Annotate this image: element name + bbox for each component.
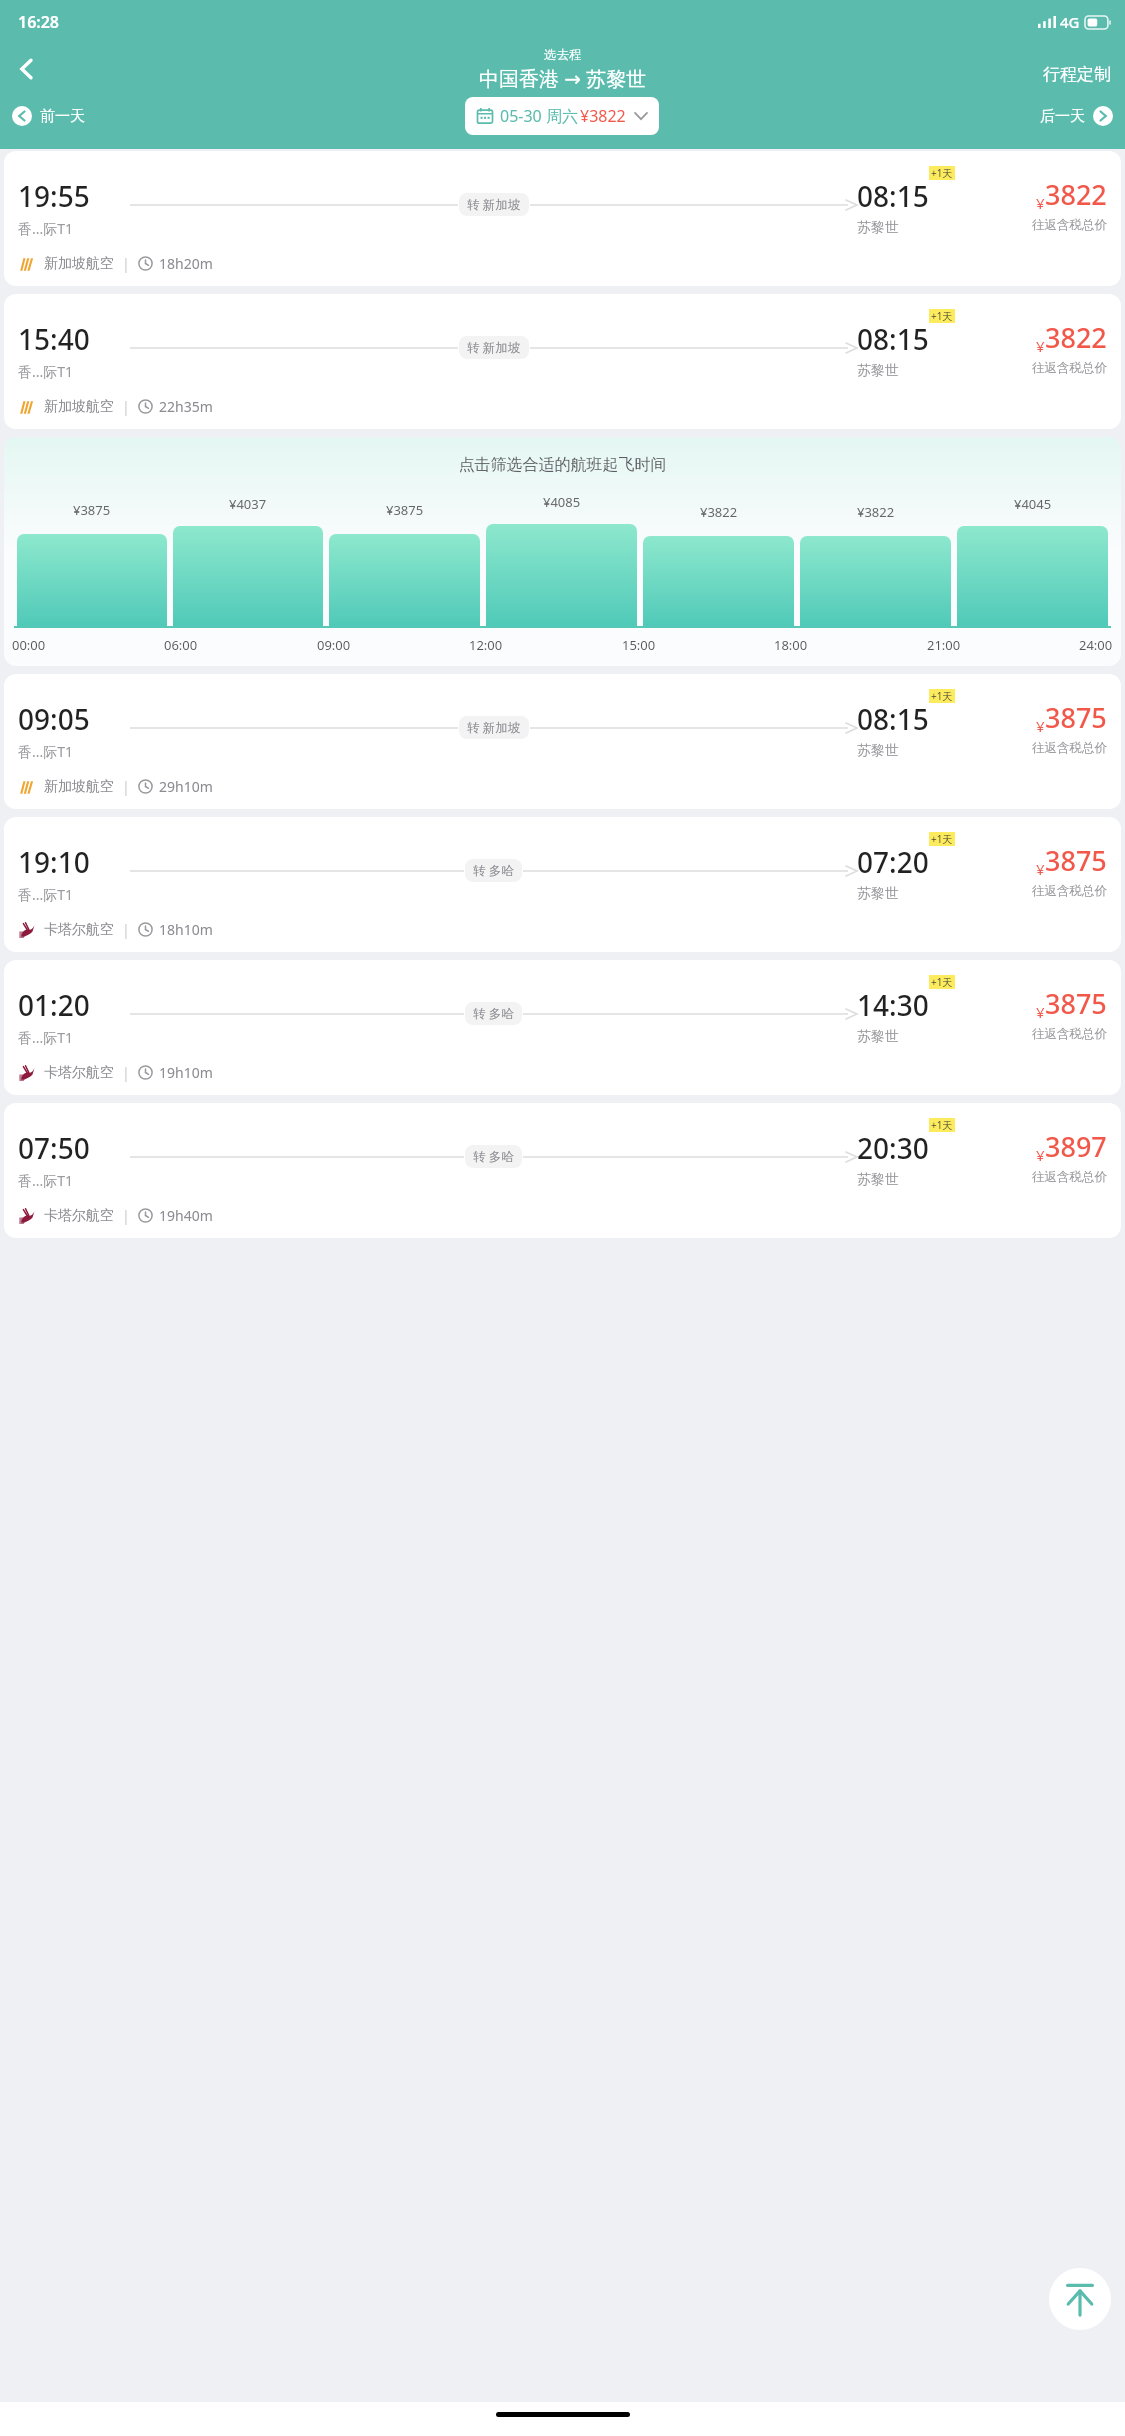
staticText: 14:30 <box>857 986 929 1024</box>
staticText: 苏黎世 <box>857 1171 899 1189</box>
staticText: 3897 <box>1045 1128 1107 1165</box>
staticText: 18h20m <box>159 254 213 273</box>
staticText: 往返含税总价 <box>1032 883 1107 899</box>
staticText: 12:00 <box>469 636 503 654</box>
staticText: 香...际T1 <box>18 742 74 761</box>
staticText: +1天 <box>931 832 953 846</box>
staticText: 00:00 <box>12 636 46 654</box>
staticText: ¥3822 <box>580 105 626 127</box>
staticText: 香...际T1 <box>18 219 74 238</box>
staticText: 苏黎世 <box>857 219 899 237</box>
staticText: 3822 <box>1045 319 1107 356</box>
staticText: 香...际T1 <box>18 362 74 381</box>
button[interactable]: Back <box>4 46 50 92</box>
staticText: 15:40 <box>18 320 90 358</box>
staticText: 新加坡航空 <box>44 778 114 796</box>
staticText: 29h10m <box>159 777 213 796</box>
button[interactable] <box>173 526 323 628</box>
staticText: 前一天 <box>40 107 85 126</box>
staticText: ¥4085 <box>543 493 581 511</box>
staticText: 16:28 <box>18 11 60 33</box>
staticText: 19h10m <box>159 1063 213 1082</box>
staticText: 香...际T1 <box>18 1171 74 1190</box>
button[interactable]: 15:40 <box>4 294 1121 429</box>
button[interactable]: 点击筛选合适的航班起飞时间 <box>4 437 1121 666</box>
staticText: 07:50 <box>18 1129 90 1167</box>
button[interactable]: 19:10 <box>4 817 1121 952</box>
staticText: 08:15 <box>857 320 929 358</box>
staticText: 行程定制 <box>1043 64 1111 85</box>
staticText: 08:15 <box>857 177 929 215</box>
button[interactable]: 后一天 <box>1034 102 1119 130</box>
staticText: 新加坡航空 <box>44 255 114 273</box>
staticText: 卡塔尔航空 <box>44 1207 114 1225</box>
staticText: 往返含税总价 <box>1032 217 1107 233</box>
staticText: 苏黎世 <box>857 362 899 380</box>
staticText: 转 多哈 <box>473 1005 514 1022</box>
button[interactable] <box>957 526 1108 628</box>
staticText: 转 新加坡 <box>467 339 521 356</box>
staticText: 19:10 <box>18 843 90 881</box>
staticText: +1天 <box>931 309 953 323</box>
staticText: 往返含税总价 <box>1032 1026 1107 1042</box>
button[interactable]: 行程定制 <box>1043 64 1111 85</box>
button[interactable] <box>17 534 167 628</box>
button[interactable]: 09:05 <box>4 674 1121 809</box>
button[interactable]: 前一天 <box>6 102 91 130</box>
staticText: 01:20 <box>18 986 90 1024</box>
staticText: 24:00 <box>1079 636 1113 654</box>
button[interactable]: 07:50 <box>4 1103 1121 1238</box>
button[interactable]: 19:55 <box>4 151 1121 286</box>
staticText: | <box>122 397 130 416</box>
button[interactable] <box>643 536 794 628</box>
staticText: 后一天 <box>1040 107 1085 126</box>
staticText: 05-30 周六 <box>500 105 578 127</box>
staticText: 19h40m <box>159 1206 213 1225</box>
staticText: 15:00 <box>622 636 656 654</box>
staticText: | <box>122 1206 130 1225</box>
staticText: 4G <box>1060 12 1080 32</box>
staticText: 3875 <box>1045 985 1107 1022</box>
staticText: 卡塔尔航空 <box>44 1064 114 1082</box>
staticText: 21:00 <box>927 636 961 654</box>
staticText: 08:15 <box>857 700 929 738</box>
staticText: 苏黎世 <box>857 885 899 903</box>
staticText: 3875 <box>1045 842 1107 879</box>
staticText: 09:00 <box>317 636 351 654</box>
staticText: ¥ <box>1036 716 1045 736</box>
staticText: 19:55 <box>18 177 90 215</box>
staticText: ¥3822 <box>857 503 895 521</box>
staticText: +1天 <box>931 975 953 989</box>
staticText: | <box>122 1063 130 1082</box>
staticText: 转 多哈 <box>473 1148 514 1165</box>
button[interactable] <box>329 534 480 628</box>
staticText: 转 新加坡 <box>467 719 521 736</box>
staticText: ¥ <box>1036 859 1045 879</box>
staticText: 往返含税总价 <box>1032 360 1107 376</box>
button[interactable]: Scroll to top <box>1049 2268 1111 2330</box>
button[interactable]: 05-30 周六 <box>465 97 659 135</box>
button[interactable] <box>486 524 637 628</box>
staticText: 06:00 <box>164 636 198 654</box>
staticText: ¥4037 <box>229 495 267 513</box>
staticText: 09:05 <box>18 700 90 738</box>
staticText: 香...际T1 <box>18 885 74 904</box>
staticText: 香...际T1 <box>18 1028 74 1047</box>
staticText: ¥ <box>1036 336 1045 356</box>
staticText: 选去程 <box>544 47 582 63</box>
staticText: 3822 <box>1045 176 1107 213</box>
staticText: ¥4045 <box>1014 495 1052 513</box>
staticText: 往返含税总价 <box>1032 740 1107 756</box>
staticText: ¥ <box>1036 1002 1045 1022</box>
staticText: 新加坡航空 <box>44 398 114 416</box>
staticText: 18:00 <box>774 636 808 654</box>
button[interactable]: 01:20 <box>4 960 1121 1095</box>
button[interactable] <box>800 536 951 628</box>
staticText: 转 多哈 <box>473 862 514 879</box>
staticText: +1天 <box>931 166 953 180</box>
staticText: 苏黎世 <box>857 1028 899 1046</box>
staticText: 20:30 <box>857 1129 929 1167</box>
staticText: 3875 <box>1045 699 1107 736</box>
staticText: 点击筛选合适的航班起飞时间 <box>4 455 1121 475</box>
staticText: +1天 <box>931 1118 953 1132</box>
